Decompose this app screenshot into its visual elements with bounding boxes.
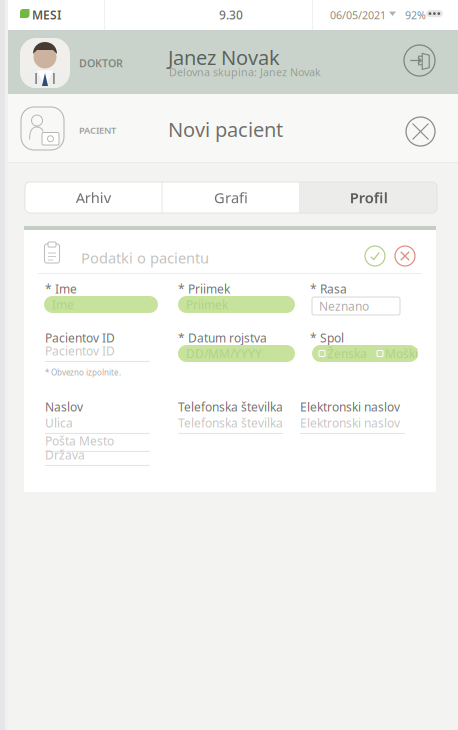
staticText: * Obvezno izpolnite. <box>45 367 121 378</box>
staticText: Novi pacient <box>168 116 283 143</box>
staticText: * Spol <box>310 330 344 346</box>
staticText: * Priimek <box>178 281 230 297</box>
staticText: Grafi <box>214 188 248 207</box>
staticText: Elektronski naslov <box>300 415 400 431</box>
staticText: Pacientov ID <box>45 343 115 359</box>
button[interactable]: Grafi <box>163 182 299 213</box>
staticText: * Ime <box>45 281 77 297</box>
staticText: DOKTOR <box>79 56 123 70</box>
staticText: Ulica <box>45 415 73 431</box>
button[interactable]: Prekliči <box>395 246 415 266</box>
staticText: Arhiv <box>76 188 111 207</box>
staticText: Elektronski naslov <box>300 399 400 415</box>
button[interactable]: Potrdi <box>365 246 385 266</box>
staticText: * Datum rojstva <box>178 330 267 346</box>
staticText: 9.30 <box>219 7 243 23</box>
staticText: 92% <box>405 8 426 22</box>
staticText: Telefonska številka <box>178 399 283 415</box>
staticText: * Rasa <box>310 281 347 297</box>
staticText: DD/MM/YYYY <box>186 345 262 361</box>
staticText: Naslov <box>45 399 83 415</box>
staticText: Pacientov ID <box>45 330 115 346</box>
staticText: Ime <box>52 296 74 312</box>
staticText: PACIENT <box>79 124 116 136</box>
button[interactable]: Odjava <box>404 45 435 76</box>
staticText: Priimek <box>186 296 228 312</box>
staticText: Država <box>45 447 85 463</box>
staticText: Neznano <box>319 298 369 314</box>
staticText: Profil <box>350 188 388 207</box>
staticText: MESI <box>32 7 61 23</box>
staticText: Telefonska številka <box>178 415 283 431</box>
staticText: Ženska <box>327 345 367 361</box>
staticText: Janez Novak <box>168 44 280 71</box>
staticText: Moški <box>385 345 418 361</box>
button[interactable]: Zapri <box>406 117 435 146</box>
staticText: Delovna skupina: Janez Novak <box>169 65 321 79</box>
button[interactable]: Arhiv <box>25 182 162 213</box>
staticText: 06/05/2021 <box>330 8 386 22</box>
button[interactable]: Profil <box>300 182 437 213</box>
staticText: Pošta Mesto <box>45 433 114 449</box>
staticText: Podatki o pacientu <box>81 248 209 267</box>
